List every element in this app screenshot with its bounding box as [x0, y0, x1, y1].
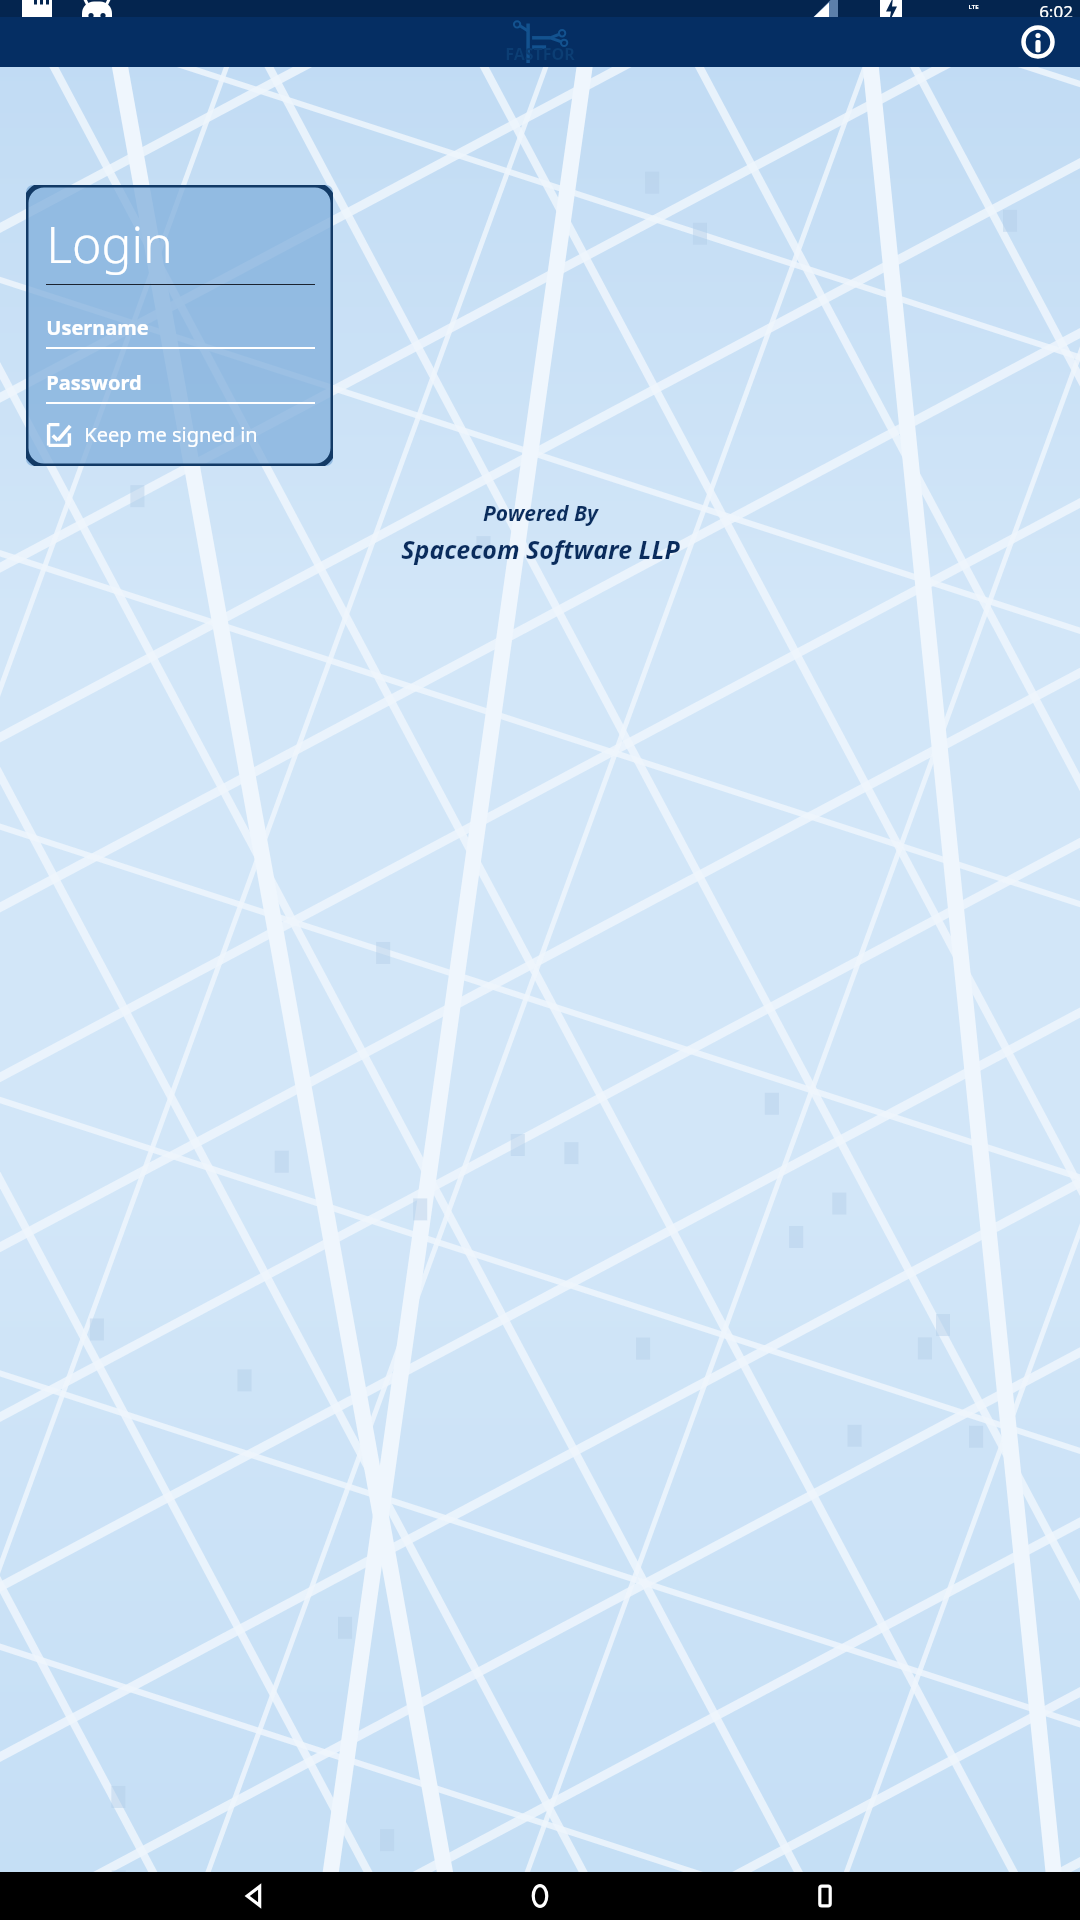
- staticText: Spacecom Software LLP: [401, 532, 680, 566]
- button[interactable]: Back: [225, 1872, 285, 1920]
- staticText: Powered By: [483, 499, 598, 528]
- staticText: Keep me signed in: [84, 421, 258, 448]
- staticText: Login: [46, 210, 173, 278]
- staticText: Username: [46, 314, 149, 341]
- staticText: FASTFOR: [505, 43, 575, 65]
- button[interactable]: Keep me signed in: [46, 421, 258, 448]
- button[interactable]: Information: [1018, 22, 1058, 62]
- staticText: Password: [46, 369, 142, 396]
- button[interactable]: Recent apps: [795, 1872, 855, 1920]
- button[interactable]: Home: [510, 1872, 570, 1920]
- staticText: 6:02: [1039, 0, 1073, 17]
- staticText: LTE: [968, 3, 979, 11]
